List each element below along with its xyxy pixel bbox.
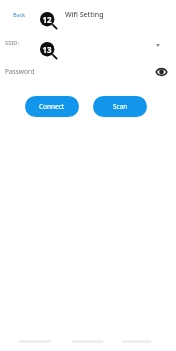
staticText: SSID: <box>5 39 20 47</box>
staticText: Back <box>13 11 26 18</box>
staticText: 13 <box>42 44 52 55</box>
button[interactable]: Show password <box>153 64 169 79</box>
staticText: Scan <box>113 102 128 111</box>
button[interactable]: Password <box>0 64 176 79</box>
staticText: Wifi Setting <box>65 10 104 20</box>
button[interactable]: Scan <box>93 96 147 117</box>
button[interactable]: SSID: <box>0 36 176 50</box>
button[interactable]: Back <box>10 8 29 21</box>
button[interactable]: Choose network <box>152 39 164 51</box>
staticText: Password <box>5 67 35 76</box>
staticText: 12 <box>42 14 52 25</box>
staticText: Connect <box>39 102 65 111</box>
button[interactable]: Connect <box>25 96 79 117</box>
